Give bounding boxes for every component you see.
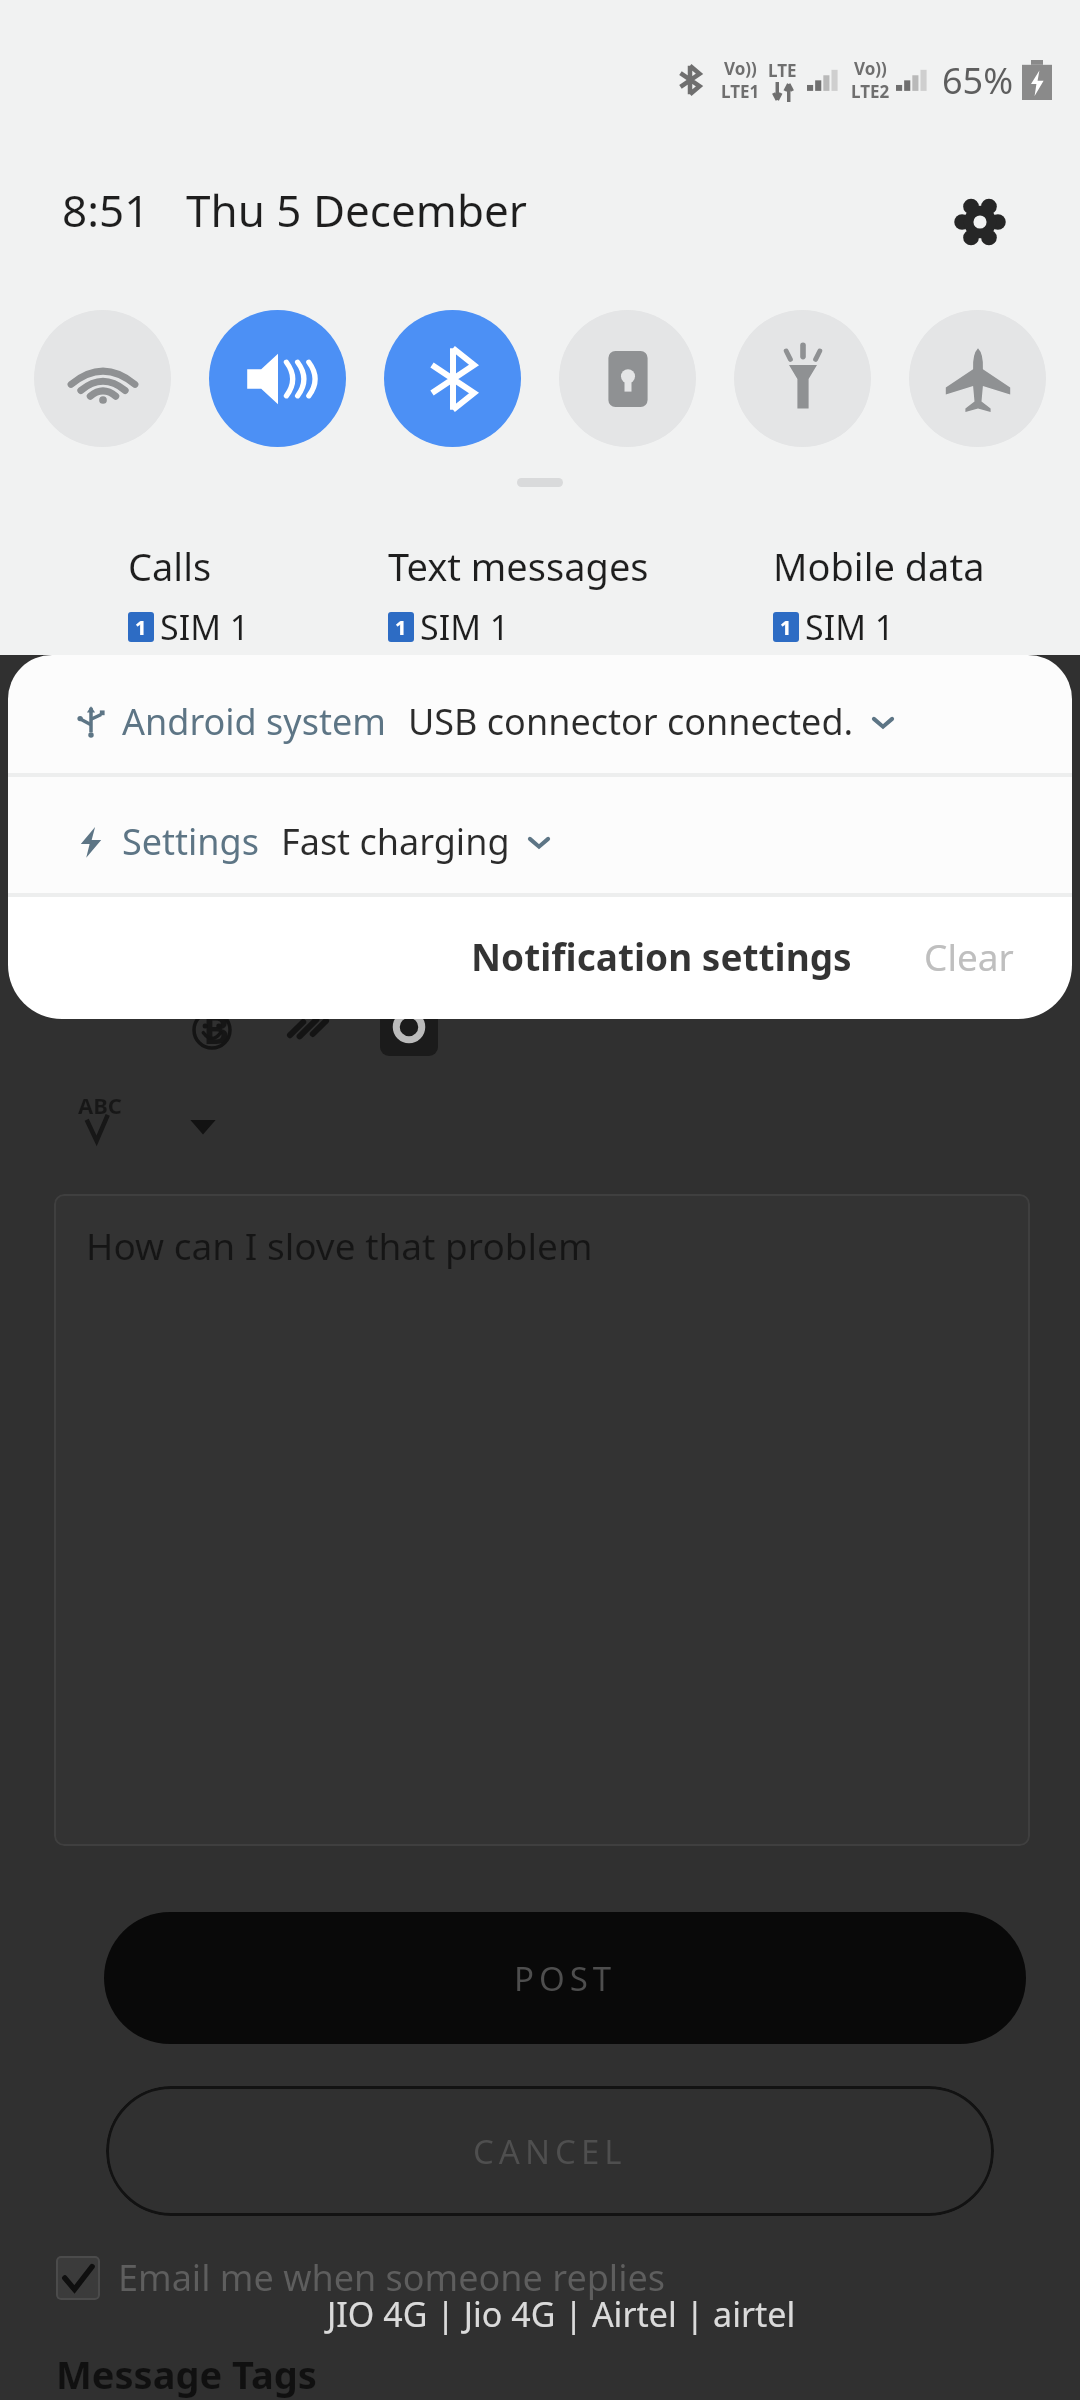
staticText: B: [203, 1001, 230, 1055]
staticText: LTE2: [851, 80, 890, 103]
button[interactable]: Settings: [938, 180, 1022, 264]
button[interactable]: torch: [734, 310, 871, 447]
button[interactable]: Android system: [8, 655, 1072, 773]
staticText: SIM 1: [805, 604, 895, 650]
button[interactable]: POST: [104, 1912, 1026, 2044]
staticText: LTE1: [721, 80, 760, 103]
button[interactable]: plane: [909, 310, 1046, 447]
button[interactable]: Calls: [128, 540, 388, 650]
button[interactable]: Insert image: [380, 998, 438, 1056]
staticText: 8:51: [62, 180, 150, 240]
staticText: CANCEL: [473, 2129, 627, 2174]
staticText: Clear: [924, 931, 1014, 981]
staticText: Calls: [128, 540, 212, 592]
button[interactable]: Settings: [8, 777, 1072, 893]
staticText: SIM 1: [420, 604, 510, 650]
staticText: Settings: [122, 817, 259, 866]
button[interactable]: Emoji: [182, 1000, 242, 1060]
staticText: SIM 1: [160, 604, 250, 650]
button[interactable]: bt: [384, 310, 521, 447]
staticText: 65%: [942, 56, 1014, 105]
button[interactable]: wifi: [34, 310, 171, 447]
staticText: Fast charging: [281, 817, 510, 866]
button[interactable]: sound: [209, 310, 346, 447]
staticText: Email me when someone replies: [118, 2253, 665, 2302]
staticText: ABC: [78, 1090, 122, 1120]
staticText: Notification settings: [471, 931, 852, 981]
staticText: POST: [514, 1956, 617, 2001]
staticText: 1: [780, 614, 792, 641]
staticText: LTE: [768, 59, 797, 82]
button[interactable]: Insert link: [278, 998, 338, 1058]
staticText: Thu 5 December: [186, 180, 527, 240]
button[interactable]: Mobile data: [773, 540, 1033, 650]
button[interactable]: Email me when someone replies: [56, 2253, 665, 2302]
button[interactable]: Notification settings: [459, 897, 864, 1015]
staticText: USB connector connected.: [408, 697, 854, 746]
button[interactable]: Bold: [188, 1000, 244, 1056]
staticText: 1: [135, 614, 147, 641]
staticText: JIO 4G | Jio 4G | Airtel | airtel: [327, 2291, 796, 2337]
staticText: How can I slove that problem: [86, 1220, 593, 1270]
button[interactable]: Clear: [912, 897, 1026, 1015]
button[interactable]: Choose language: [182, 1105, 224, 1147]
button[interactable]: Spell check: [78, 1090, 140, 1152]
staticText: Android system: [122, 697, 386, 746]
staticText: Message Tags: [56, 2348, 317, 2400]
staticText: Vo)): [854, 57, 887, 80]
staticText: 1: [395, 614, 407, 641]
button[interactable]: Text messages: [388, 540, 773, 650]
button[interactable]: lock: [559, 310, 696, 447]
staticText: Vo)): [724, 57, 757, 80]
button[interactable]: CANCEL: [106, 2086, 994, 2216]
staticText: Text messages: [388, 540, 649, 592]
staticText: Mobile data: [773, 540, 985, 592]
